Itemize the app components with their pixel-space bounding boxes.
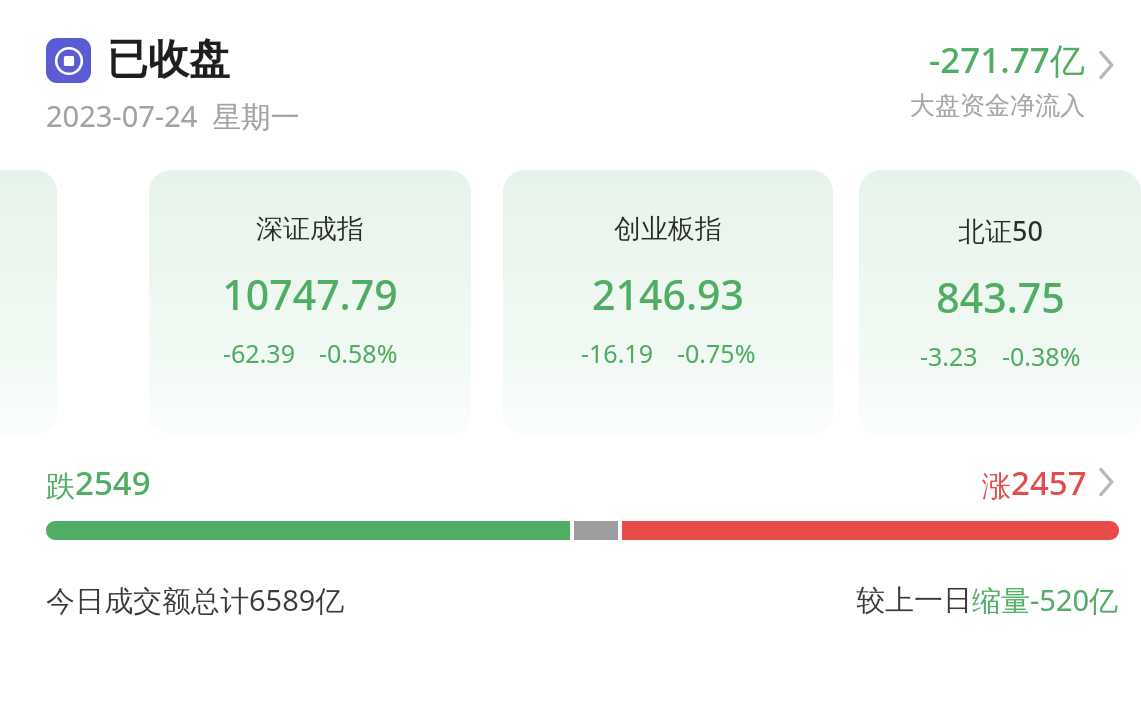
staticText: 较上一日	[856, 582, 972, 619]
staticText: 创业板指	[614, 212, 722, 246]
staticText: 缩量-520亿	[972, 580, 1119, 620]
staticText: 2549	[75, 460, 151, 505]
button[interactable]: 今日成交额总计6589亿	[46, 580, 1119, 620]
staticText: 北证50	[958, 212, 1043, 249]
staticText: -271.77亿	[929, 36, 1085, 84]
staticText: -0.38%	[1002, 339, 1081, 373]
staticText: -0.75%	[677, 336, 756, 370]
button[interactable]: Market status	[46, 34, 910, 136]
other: Market status	[46, 38, 91, 83]
staticText: -3.23	[920, 339, 978, 373]
button[interactable]: 跌	[0, 438, 1141, 540]
staticText: 10747.79	[222, 266, 398, 322]
staticText: 已收盘	[107, 34, 230, 86]
staticText: 跌	[46, 468, 75, 505]
button[interactable]: -271.77亿	[910, 36, 1119, 121]
staticText: -0.58%	[319, 336, 398, 370]
staticText: 2457	[1011, 460, 1087, 505]
staticText: 2146.93	[592, 266, 744, 322]
button[interactable]	[0, 170, 57, 436]
staticText: 深证成指	[256, 212, 364, 246]
staticText: -62.39	[223, 336, 295, 370]
button[interactable]: 深证成指	[149, 170, 471, 436]
button[interactable]: 创业板指	[503, 170, 833, 436]
staticText: 大盘资金净流入	[910, 90, 1085, 121]
staticText: 2023-07-24 星期一	[46, 96, 300, 136]
staticText: 今日成交额总计6589亿	[46, 580, 345, 620]
staticText: -16.19	[581, 336, 653, 370]
staticText: 843.75	[936, 269, 1065, 325]
staticText: 涨	[982, 468, 1011, 505]
button[interactable]: 北证50	[859, 170, 1141, 436]
